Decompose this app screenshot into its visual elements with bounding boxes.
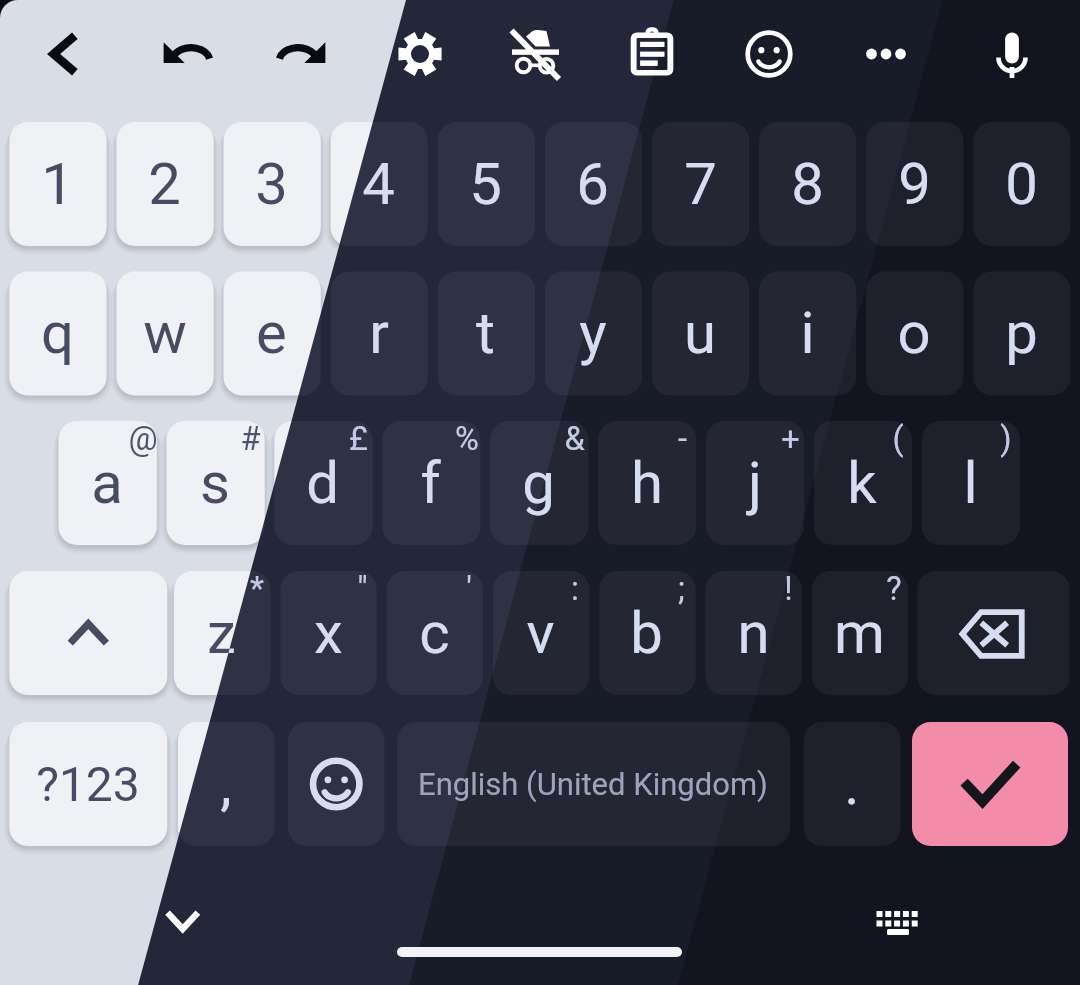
button[interactable]: Voice input	[959, 0, 1065, 108]
staticText: ;	[678, 570, 685, 608]
staticText: *	[250, 570, 264, 608]
staticText: q	[41, 299, 74, 367]
staticText: y	[579, 299, 607, 367]
button[interactable]: t	[437, 271, 534, 395]
button[interactable]: 2	[116, 122, 213, 246]
button[interactable]: Back	[9, 0, 115, 108]
staticText: *	[250, 570, 264, 608]
staticText: j	[748, 449, 762, 517]
staticText: &	[564, 420, 585, 458]
staticText: 6	[576, 150, 609, 218]
button[interactable]: g	[490, 421, 588, 545]
staticText: 4	[362, 150, 395, 218]
staticText: 5	[469, 150, 502, 218]
button[interactable]: More options	[833, 0, 939, 108]
button[interactable]: 4	[330, 122, 427, 246]
button[interactable]: Undo	[134, 0, 240, 108]
button[interactable]: c	[386, 571, 482, 695]
button[interactable]: b	[599, 571, 695, 695]
button[interactable]: Period	[803, 722, 900, 846]
button[interactable]: Enter	[912, 722, 1068, 846]
staticText: #	[240, 420, 261, 458]
button[interactable]: 8	[759, 122, 856, 246]
staticText: e	[256, 299, 287, 367]
button[interactable]: e	[223, 271, 320, 395]
button[interactable]: Switch input method	[845, 879, 951, 965]
button[interactable]: 6	[544, 122, 641, 246]
button[interactable]: Emoji	[288, 722, 384, 846]
button[interactable]: p	[973, 271, 1070, 395]
button[interactable]: k	[813, 421, 911, 545]
staticText: &	[564, 420, 585, 458]
staticText: p	[1005, 299, 1038, 367]
button[interactable]: 1	[9, 122, 106, 246]
staticText: u	[684, 299, 716, 367]
button[interactable]: 3	[223, 122, 320, 246]
staticText: -	[678, 420, 687, 458]
staticText: a	[91, 449, 123, 517]
staticText: .	[844, 750, 860, 818]
button[interactable]: Delete	[917, 571, 1069, 695]
staticText: v	[526, 599, 555, 667]
button[interactable]: 7	[651, 122, 748, 246]
button[interactable]: Symbol keyboard	[9, 722, 167, 846]
button[interactable]: z	[174, 571, 270, 695]
staticText: j	[748, 449, 762, 517]
button[interactable]: 9	[866, 122, 963, 246]
button[interactable]: n	[705, 571, 801, 695]
button[interactable]: a	[58, 421, 156, 545]
button[interactable]: 0	[973, 122, 1070, 246]
button[interactable]: q	[9, 271, 106, 395]
button[interactable]: f	[382, 421, 480, 545]
staticText: k	[847, 449, 877, 517]
button[interactable]: s	[166, 421, 264, 545]
staticText: :	[571, 570, 579, 608]
staticText: w	[143, 299, 187, 367]
button[interactable]: d	[274, 421, 372, 545]
button[interactable]: Comma	[178, 722, 274, 846]
button[interactable]: Clipboard	[599, 0, 705, 108]
staticText: f	[420, 449, 441, 517]
staticText: "	[357, 570, 368, 608]
staticText: English (United Kingdom)	[418, 766, 768, 802]
button[interactable]: o	[866, 271, 963, 395]
button[interactable]: r	[330, 271, 427, 395]
staticText: q	[41, 299, 74, 367]
staticText: 3	[255, 150, 288, 218]
staticText: )	[1000, 420, 1012, 458]
staticText: %	[455, 420, 479, 458]
staticText: 3	[255, 150, 288, 218]
button[interactable]: l	[921, 421, 1019, 545]
staticText: %	[455, 420, 479, 458]
staticText: £	[349, 420, 368, 458]
button[interactable]: Space	[397, 722, 790, 846]
staticText: n	[737, 599, 770, 667]
staticText: o	[897, 299, 931, 367]
button[interactable]: Incognito mode off	[482, 0, 588, 108]
staticText: v	[526, 599, 555, 667]
staticText: 6	[576, 150, 609, 218]
button[interactable]: y	[544, 271, 641, 395]
button[interactable]: u	[651, 271, 748, 395]
button[interactable]: 5	[437, 122, 534, 246]
button[interactable]: Hide keyboard	[130, 879, 236, 965]
button[interactable]: v	[492, 571, 588, 695]
staticText: -	[678, 420, 687, 458]
staticText: h	[631, 449, 663, 517]
staticText: c	[419, 599, 450, 667]
button[interactable]: x	[280, 571, 376, 695]
staticText: r	[369, 299, 389, 367]
button[interactable]: Settings	[367, 0, 473, 108]
button[interactable]: h	[598, 421, 696, 545]
button[interactable]: Redo	[249, 0, 355, 108]
staticText: @	[128, 420, 158, 458]
button[interactable]: Shift	[9, 571, 167, 695]
button[interactable]: Emoji	[716, 0, 822, 108]
button[interactable]: j	[705, 421, 803, 545]
button[interactable]: i	[759, 271, 856, 395]
staticText: 5	[469, 150, 502, 218]
button[interactable]: m	[811, 571, 907, 695]
button[interactable]: w	[116, 271, 213, 395]
staticText: k	[847, 449, 877, 517]
staticText: ?	[886, 570, 902, 608]
